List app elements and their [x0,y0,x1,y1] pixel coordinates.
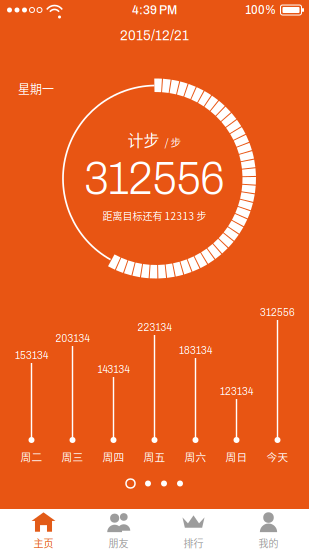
staticText: 周五 [143,449,165,464]
staticText: 223134 [137,322,171,333]
staticText: 100% [245,3,276,17]
staticText: 排行 [183,536,203,550]
staticText: 123134 [220,386,253,397]
staticText: 143134 [97,364,129,375]
staticText: 4:39 PM [132,3,177,17]
staticText: 周六 [184,449,206,464]
staticText: 183134 [179,345,212,356]
button[interactable]: 主页 [6,509,81,550]
staticText: 周二 [20,449,42,464]
staticText: 203134 [55,333,89,344]
staticText: 主页 [33,536,53,550]
staticText: 周日 [225,449,247,464]
staticText: 周四 [102,449,124,464]
button[interactable]: 排行 [156,509,231,550]
staticText: 我的 [258,536,278,550]
staticText: 朋友 [108,536,128,550]
staticText: 今天 [266,449,288,464]
staticText: 2015/12/21 [120,28,189,43]
button[interactable]: 我的 [231,509,306,550]
staticText: 312556 [260,307,295,318]
staticText: 距离目标还有 12313 步 [102,208,206,223]
staticText: / 步 [164,134,181,150]
staticText: 312556 [84,154,224,203]
button[interactable]: 朋友 [81,509,156,550]
staticText: 星期一 [18,80,54,97]
staticText: 周三 [61,449,83,464]
staticText: 153134 [15,350,48,361]
staticText: 计步 [127,128,159,151]
